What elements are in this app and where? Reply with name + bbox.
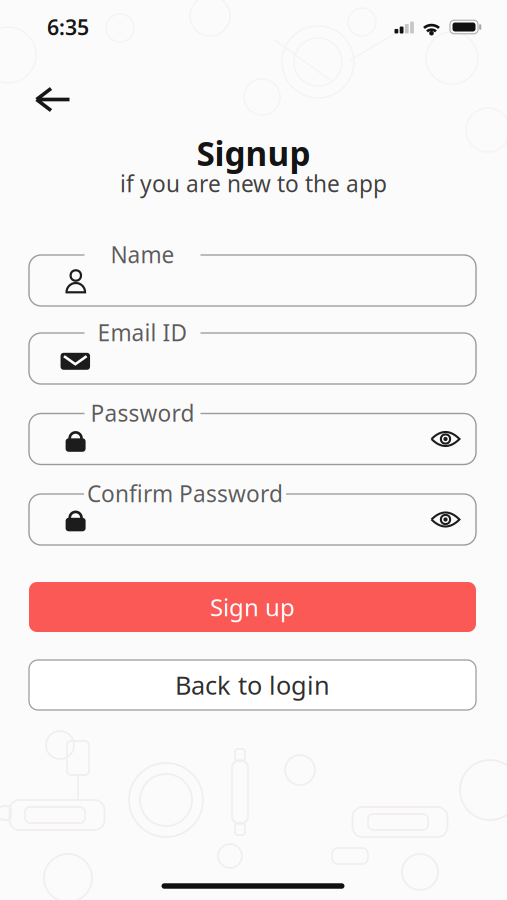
staticText: Name bbox=[110, 239, 174, 269]
staticText: 6:35 bbox=[47, 13, 89, 41]
staticText: Confirm Password bbox=[87, 478, 283, 508]
button[interactable]: Show confirm password bbox=[425, 504, 465, 534]
staticText: if you are new to the app bbox=[120, 168, 387, 198]
button[interactable]: Back bbox=[31, 83, 75, 117]
staticText: Back to login bbox=[175, 668, 330, 702]
staticText: Sign up bbox=[210, 591, 295, 623]
staticText: Signup bbox=[196, 131, 310, 175]
button[interactable]: Show password bbox=[425, 424, 465, 454]
staticText: Password bbox=[90, 398, 194, 428]
button[interactable]: Sign up bbox=[29, 582, 476, 632]
staticText: Email ID bbox=[97, 317, 187, 347]
button[interactable]: Back to login bbox=[29, 660, 476, 710]
